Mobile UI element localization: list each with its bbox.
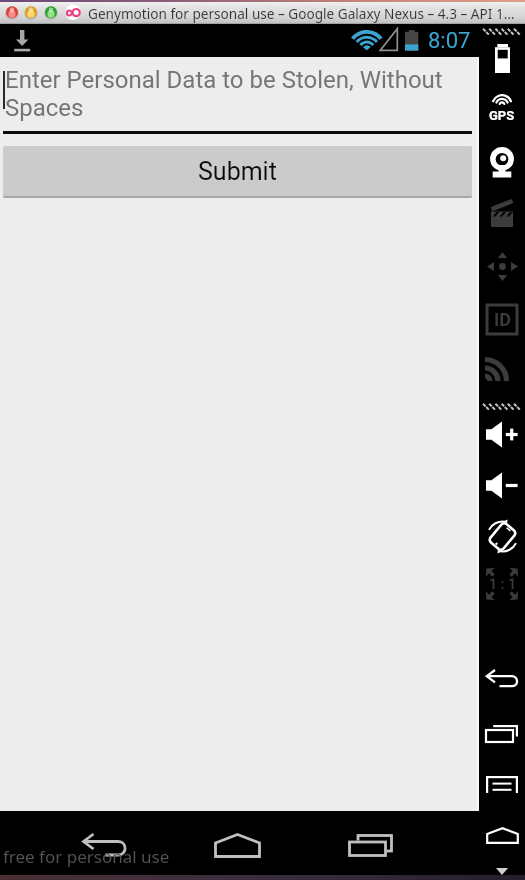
button[interactable]: Recents [344, 830, 397, 861]
button[interactable]: Home [479, 812, 525, 858]
button[interactable]: Back [479, 656, 525, 702]
button[interactable]: Camera [479, 139, 525, 185]
button[interactable]: Recents [479, 710, 525, 756]
button[interactable]: D-pad [479, 243, 525, 289]
button[interactable]: Network [479, 331, 525, 377]
button[interactable]: Rotate [479, 513, 525, 559]
staticText: free for personal use [3, 845, 170, 868]
button[interactable]: Submit [3, 146, 472, 198]
button[interactable]: Home [211, 830, 264, 861]
staticText: Enter Personal Data to be Stolen, Withou… [5, 66, 471, 122]
staticText: 8:07 [428, 28, 471, 54]
button[interactable]: Device ID [479, 296, 525, 342]
staticText: Submit [198, 157, 277, 186]
button[interactable]: GPS [479, 86, 525, 132]
staticText: Genymotion for personal use – Google Gal… [88, 4, 515, 23]
button[interactable]: More [494, 866, 510, 876]
button[interactable]: Personal data field [0, 62, 477, 135]
button[interactable]: Reset zoom [479, 561, 525, 607]
staticText: GPS [489, 108, 515, 123]
button[interactable]: Menu [479, 761, 525, 807]
staticText: ID [494, 309, 511, 330]
button[interactable]: Battery [479, 35, 525, 81]
button[interactable]: Volume up [479, 411, 525, 457]
button[interactable]: Back [78, 830, 131, 861]
button[interactable]: Volume down [479, 462, 525, 508]
button[interactable]: Record screen [479, 190, 525, 236]
staticText: 1 : 1 [489, 576, 516, 592]
